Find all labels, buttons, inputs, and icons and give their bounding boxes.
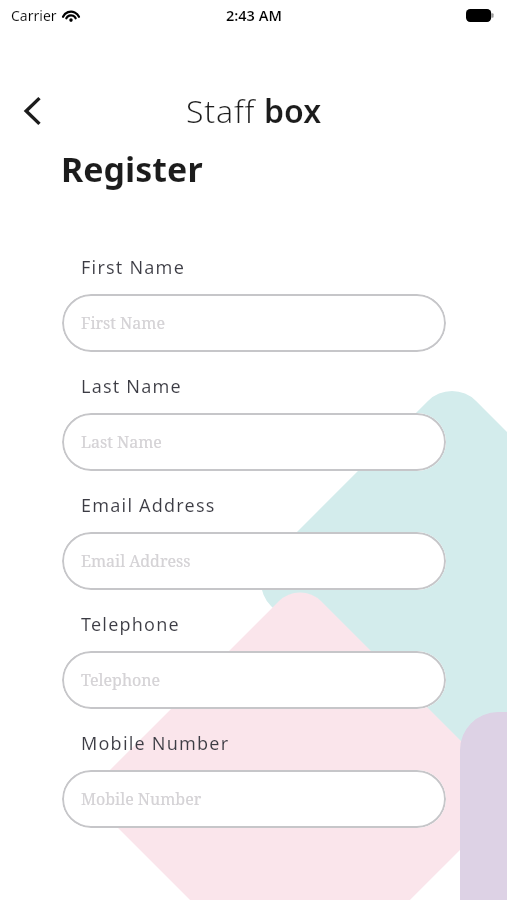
staticText: Staff [186,89,256,133]
staticText: 2:43 AM [226,5,282,25]
staticText: box [264,89,322,133]
button[interactable]: Last Name [62,413,446,471]
button[interactable]: Email Address [62,532,446,590]
staticText: Email Address [81,550,191,572]
button[interactable]: Mobile Number [62,770,446,828]
staticText: First Name [81,255,185,280]
staticText: Carrier [11,6,57,25]
staticText: Register [61,146,203,192]
staticText: Last Name [81,431,162,453]
staticText: Telephone [81,612,180,637]
button[interactable]: Telephone [62,651,446,709]
staticText: Mobile Number [81,788,202,810]
staticText: Telephone [81,669,161,691]
staticText: Email Address [81,493,216,518]
button[interactable]: Back [11,89,55,133]
staticText: Last Name [81,374,182,399]
staticText: First Name [81,312,166,334]
staticText: Mobile Number [81,731,230,756]
button[interactable]: First Name [62,294,446,352]
